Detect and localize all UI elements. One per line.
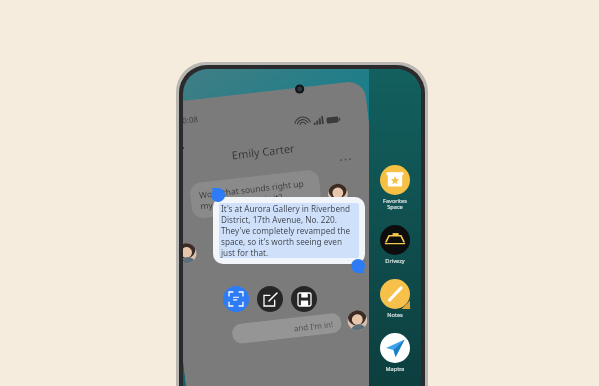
staticText: It's at Aurora Gallery in Riverbend Dist… bbox=[221, 203, 357, 258]
button[interactable]: Drivezy bbox=[378, 225, 412, 265]
button[interactable]: Select text bbox=[223, 286, 249, 312]
staticText: 10:08 bbox=[183, 113, 199, 126]
button[interactable]: Save bbox=[291, 286, 317, 312]
staticText: Favorites Space bbox=[383, 197, 407, 211]
button[interactable]: Notes bbox=[378, 279, 412, 319]
button[interactable]: Favorites Space bbox=[378, 165, 412, 211]
button[interactable]: More options bbox=[339, 156, 353, 163]
button[interactable]: Back bbox=[183, 136, 189, 152]
staticText: Drivezy bbox=[385, 257, 405, 265]
staticText: and I'm in! bbox=[293, 318, 334, 334]
button[interactable]: It's at Aurora Gallery in Riverbend Dist… bbox=[219, 203, 359, 258]
staticText: Emily Carter bbox=[231, 140, 295, 162]
staticText: Notes bbox=[387, 311, 403, 319]
button[interactable]: Compose bbox=[257, 286, 283, 312]
staticText: Wow, that sounds right up my alley. Wher… bbox=[198, 177, 312, 211]
button[interactable]: Wow, that sounds right up my alley. Wher… bbox=[198, 177, 312, 211]
button[interactable]: Maptra bbox=[378, 333, 412, 373]
staticText: Maptra bbox=[385, 365, 405, 373]
